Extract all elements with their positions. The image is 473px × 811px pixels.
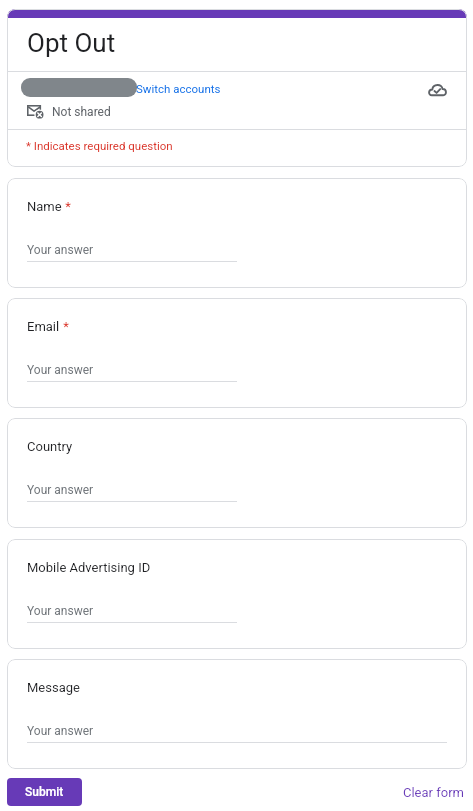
staticText: Name <box>27 199 62 214</box>
button[interactable]: Switch accounts <box>136 82 221 95</box>
button[interactable]: Submit <box>7 778 82 806</box>
staticText: * <box>60 319 69 334</box>
button[interactable]: Message <box>7 659 467 769</box>
button[interactable]: Saved to Drive <box>417 72 445 100</box>
staticText: Your answer <box>27 724 94 738</box>
button[interactable]: Name <box>7 178 467 288</box>
staticText: Your answer <box>27 243 94 257</box>
staticText: Message <box>27 680 80 695</box>
staticText: Clear form <box>403 785 464 800</box>
staticText: Your answer <box>27 363 94 377</box>
button[interactable]: Email <box>7 298 467 408</box>
staticText: Email <box>27 319 60 334</box>
staticText: Submit <box>25 785 64 799</box>
staticText: * Indicates required question <box>26 139 173 152</box>
button[interactable]: Country <box>7 418 467 528</box>
staticText: * <box>62 199 71 214</box>
staticText: Your answer <box>27 604 94 618</box>
button[interactable]: Clear form <box>396 780 470 804</box>
staticText: Country <box>27 439 73 454</box>
button[interactable]: Mobile Advertising ID <box>7 539 467 649</box>
staticText: Not shared <box>52 105 111 119</box>
staticText: Opt Out <box>27 28 116 58</box>
staticText: Your answer <box>27 483 94 497</box>
staticText: Mobile Advertising ID <box>27 560 151 575</box>
